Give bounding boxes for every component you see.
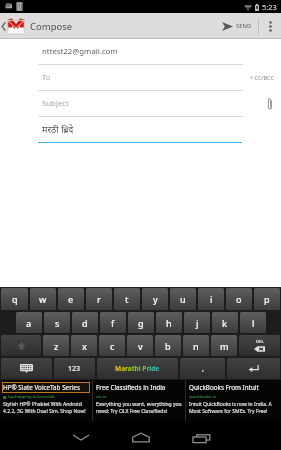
staticText: मरठी ब्रिदे	[42, 123, 74, 135]
staticText: Compose	[30, 20, 73, 33]
staticText: q	[12, 293, 18, 305]
button[interactable]: i	[198, 288, 224, 310]
button[interactable]: l	[240, 312, 266, 333]
staticText: olx.in	[96, 394, 107, 400]
button[interactable]: t	[114, 288, 140, 310]
button[interactable]: nttest22@gmail.com	[0, 39, 281, 64]
button[interactable]: DEL	[239, 335, 280, 356]
staticText: n	[193, 340, 199, 352]
button[interactable]: SEND	[216, 13, 258, 39]
staticText: h	[166, 317, 172, 329]
button[interactable]: x	[71, 335, 97, 356]
button[interactable]: k	[212, 312, 238, 333]
button[interactable]: m	[211, 335, 237, 356]
button[interactable]: ,	[180, 358, 225, 379]
button[interactable]: Home	[111, 421, 171, 450]
staticText: l	[252, 317, 255, 329]
staticText: hpshopping.in/voicetab	[8, 394, 55, 400]
other: Navigate up	[1, 22, 6, 31]
staticText: u	[180, 293, 186, 305]
button[interactable]: मरठी ब्रिदे	[0, 117, 281, 143]
staticText: QuickBooks From Intuit	[189, 383, 259, 392]
button[interactable]: Enter	[227, 358, 280, 379]
button[interactable]: To	[0, 65, 281, 90]
button[interactable]: Free Classifieds in India	[93, 380, 185, 421]
staticText: f	[111, 317, 115, 329]
staticText: c	[110, 340, 115, 352]
staticText: x	[82, 340, 87, 352]
staticText: z	[54, 340, 59, 352]
button[interactable]: p	[254, 288, 280, 310]
button[interactable]: j	[184, 312, 210, 333]
button[interactable]: w	[30, 288, 56, 310]
staticText: ,	[202, 364, 204, 374]
button[interactable]: Switch keyboard	[1, 358, 52, 379]
button[interactable]: c	[99, 335, 125, 356]
button[interactable]: y	[142, 288, 168, 310]
button[interactable]: h	[156, 312, 182, 333]
staticText: y	[153, 293, 158, 305]
staticText: To	[42, 72, 51, 83]
staticText: o	[236, 293, 242, 305]
staticText: p	[264, 293, 270, 305]
button[interactable]: 123	[54, 358, 95, 379]
staticText: a	[26, 317, 32, 329]
staticText: SEND	[236, 22, 252, 30]
staticText: + CC/BCC	[250, 74, 274, 81]
button[interactable]: f	[100, 312, 126, 333]
button[interactable]: n	[183, 335, 209, 356]
other: Shift	[17, 342, 26, 350]
staticText: r	[97, 293, 101, 305]
staticText: w	[39, 293, 47, 305]
button[interactable]: o	[226, 288, 252, 310]
staticText: 5:23	[262, 2, 277, 12]
staticText: HP® Slate VoiceTab Series	[3, 383, 80, 392]
other: Switch keyboard	[20, 364, 33, 373]
button[interactable]: Shift	[1, 335, 41, 356]
button[interactable]: + CC/BCC	[243, 70, 281, 85]
staticText: g	[138, 317, 144, 329]
staticText: Marathi Pride	[115, 364, 160, 373]
staticText: Subject	[42, 98, 69, 109]
staticText: Stylish HP® Phablet With Android 4.2.2, …	[3, 401, 90, 414]
other: Delete	[254, 346, 265, 352]
staticText: j	[196, 317, 199, 329]
staticText: b	[165, 340, 171, 352]
button[interactable]: Navigate up	[0, 13, 26, 39]
staticText: e	[68, 293, 74, 305]
staticText: 123	[68, 364, 81, 374]
staticText: nttest22@gmail.com	[42, 46, 118, 57]
button[interactable]: g	[128, 312, 154, 333]
button[interactable]: Subject	[0, 91, 281, 116]
staticText: k	[222, 317, 228, 329]
staticText: DEL	[256, 339, 264, 345]
staticText: Free Classifieds in India	[96, 383, 166, 392]
button[interactable]: r	[86, 288, 112, 310]
button[interactable]: QuickBooks From Intuit	[186, 380, 281, 421]
button[interactable]: d	[72, 312, 98, 333]
staticText: d	[82, 317, 88, 329]
button[interactable]: More options	[259, 13, 281, 39]
button[interactable]: z	[43, 335, 69, 356]
staticText: Everything you want, everything you need…	[96, 401, 183, 414]
button[interactable]: b	[155, 335, 181, 356]
button[interactable]: u	[170, 288, 196, 310]
staticText: t	[125, 293, 129, 305]
staticText: m	[220, 340, 229, 352]
button[interactable]: Attach file	[259, 95, 281, 113]
button[interactable]: s	[44, 312, 70, 333]
staticText: i	[210, 293, 213, 305]
staticText: s	[55, 317, 60, 329]
button[interactable]: HP® Slate VoiceTab Series	[0, 380, 92, 421]
staticText: quickbooks.in	[189, 394, 217, 400]
button[interactable]: v	[127, 335, 153, 356]
button[interactable]: e	[58, 288, 84, 310]
staticText: Intuit QuickBooks is now in India. A Mus…	[189, 401, 279, 414]
button[interactable]: Hide keyboard	[51, 421, 111, 450]
staticText: v	[138, 340, 143, 352]
button[interactable]: Marathi Pride	[97, 358, 178, 379]
button[interactable]: q	[1, 288, 28, 310]
button[interactable]: a	[16, 312, 42, 333]
other: Enter	[248, 364, 259, 373]
button[interactable]: Recent apps	[171, 421, 231, 450]
